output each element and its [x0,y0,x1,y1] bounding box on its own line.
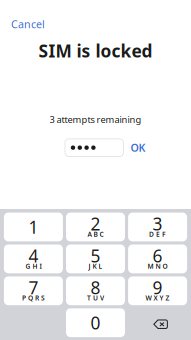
staticText: A B C [87,230,103,239]
staticText: D E F [149,230,166,239]
button[interactable]: 2 [66,213,125,241]
staticText: W X Y Z [146,294,170,302]
staticText: OK [130,141,145,155]
staticText: 6 [153,244,163,267]
staticText: P Q R S [22,294,45,302]
staticText: G H I [25,262,41,271]
button[interactable]: 5 [66,244,125,273]
button[interactable]: Delete [128,308,187,337]
button[interactable]: 9 [128,276,187,305]
staticText: J K L [88,262,102,271]
staticText: 3 [153,212,163,235]
staticText: 4 [28,244,38,267]
button[interactable]: 0 [66,308,125,337]
staticText: 9 [153,276,163,299]
button[interactable]: 4 [4,244,63,273]
button[interactable]: 6 [128,244,187,273]
staticText: M N O [148,262,168,271]
button[interactable]: 1 [4,213,63,241]
staticText: SIM is locked [38,39,152,62]
staticText: 0 [90,311,100,334]
button[interactable]: 8 [66,276,125,305]
staticText: 7 [28,276,38,299]
button[interactable]: 7 [4,276,63,305]
staticText: 3 attempts remaining [49,113,141,126]
button[interactable]: 3 [128,213,187,241]
staticText: 8 [90,276,100,299]
staticText: 2 [90,212,100,235]
staticText: Cancel [11,17,45,31]
staticText: 1 [28,215,38,238]
button[interactable]: Cancel [0,0,53,36]
staticText: T U V [87,294,104,302]
button[interactable]: OK [123,137,150,159]
staticText: 5 [90,244,100,267]
